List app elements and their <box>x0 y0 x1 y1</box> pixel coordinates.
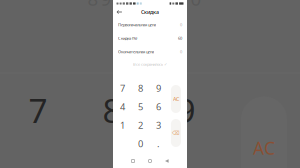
staticText: 3 <box>156 119 161 131</box>
staticText: 8 <box>87 0 98 11</box>
staticText: 8 <box>138 82 143 94</box>
staticText: 60 <box>178 36 182 41</box>
button[interactable]: 6 <box>150 97 168 116</box>
button[interactable]: . <box>150 134 168 153</box>
staticText: Все сохранилось ✓ <box>133 61 167 67</box>
button[interactable]: 1 <box>114 116 132 134</box>
staticText: AC <box>173 95 179 103</box>
button[interactable]: Скидка (%) <box>113 31 187 45</box>
staticText: 0 <box>190 0 201 11</box>
staticText: Скидка (%) <box>118 36 137 41</box>
button[interactable]: 8 <box>132 79 150 97</box>
button[interactable]: AC <box>171 85 181 113</box>
staticText: 6 <box>156 101 161 113</box>
staticText: . <box>157 138 160 150</box>
staticText: 9 <box>156 82 161 94</box>
staticText: 7 <box>28 88 47 132</box>
staticText: 2 <box>138 119 143 131</box>
button[interactable]: Окончательная цена <box>113 45 187 58</box>
staticText: Скидка <box>141 8 159 16</box>
button[interactable]: Back <box>115 8 123 16</box>
staticText: 4 <box>120 101 125 113</box>
button[interactable]: Первоначальная цена <box>113 18 187 31</box>
staticText: Первоначальная цена <box>118 22 156 27</box>
button[interactable]: 5 <box>132 97 150 116</box>
button[interactable]: Back <box>161 156 173 166</box>
staticText: AC <box>253 136 275 159</box>
button[interactable]: 2 <box>132 116 150 134</box>
button[interactable]: 0 <box>132 134 150 153</box>
staticText: 8 <box>102 88 121 132</box>
staticText: 5 <box>138 101 143 113</box>
staticText: 0 <box>138 138 143 150</box>
staticText: 1 <box>120 119 125 131</box>
button[interactable]: 7 <box>114 79 132 97</box>
button[interactable]: 3 <box>150 116 168 134</box>
staticText: 9 <box>176 88 195 132</box>
button[interactable]: Home <box>144 156 156 166</box>
button[interactable]: 4 <box>114 97 132 116</box>
staticText: 0 <box>180 22 182 27</box>
button[interactable]: Recent apps <box>127 156 139 166</box>
staticText: ⌫ <box>172 130 180 136</box>
staticText: 7 <box>120 82 125 94</box>
staticText: Окончательная цена <box>118 49 154 54</box>
staticText: 0 <box>180 49 182 54</box>
button[interactable]: Delete <box>171 119 181 147</box>
button[interactable]: 9 <box>150 79 168 97</box>
staticText: 9 <box>100 0 111 11</box>
